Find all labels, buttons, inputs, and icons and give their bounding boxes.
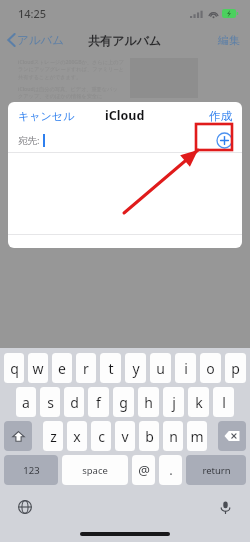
staticText: v [121,427,129,446]
staticText: t [108,359,114,378]
button[interactable]: z [43,421,63,451]
staticText: 123 [23,464,40,477]
button[interactable]: @ [132,455,155,485]
staticText: i [184,359,188,378]
staticText: y [132,359,140,378]
button[interactable]: Delete [218,421,246,451]
button[interactable]: キャンセル [18,109,75,123]
staticText: a [22,393,30,412]
staticText: w [32,359,44,378]
button[interactable]: b [139,421,159,451]
staticText: z [50,427,57,446]
button[interactable]: u [150,353,171,383]
staticText: g [119,393,128,412]
button[interactable]: アルバム [8,33,65,47]
button[interactable]: v [115,421,135,451]
button[interactable]: 作成 [209,109,232,123]
staticText: r [83,359,89,378]
button[interactable]: 連絡先を追加 [214,130,234,150]
button[interactable]: f [88,387,109,417]
button[interactable]: 123 [4,455,58,485]
button[interactable]: r [76,353,96,383]
staticText: k [195,393,203,412]
button[interactable]: g [113,387,134,417]
button[interactable]: j [163,387,184,417]
staticText: @ [138,461,150,479]
button[interactable]: d [64,387,84,417]
button[interactable]: Dictate [214,496,236,518]
button[interactable]: w [28,353,48,383]
staticText: e [58,359,66,378]
staticText: p [231,359,240,378]
button[interactable]: e [52,353,72,383]
button[interactable]: p [225,353,246,383]
staticText: 14:25 [18,6,47,21]
button[interactable]: space [62,455,128,485]
button[interactable]: t [100,353,121,383]
staticText: space [82,464,108,477]
staticText: s [47,393,54,412]
staticText: b [145,427,154,446]
staticText: x [73,427,81,446]
button[interactable]: c [91,421,111,451]
staticText: return [202,464,231,477]
button[interactable]: Change keyboard [14,496,36,518]
staticText: 宛先: [18,134,40,147]
staticText: h [144,393,153,412]
staticText: q [10,359,19,378]
button[interactable]: m [187,421,207,451]
staticText: . [169,461,173,479]
button[interactable]: Shift [4,421,32,451]
button[interactable]: o [200,353,221,383]
button[interactable]: k [188,387,209,417]
button[interactable]: . [159,455,182,485]
staticText: d [70,393,79,412]
staticText: o [206,359,215,378]
staticText: l [222,393,226,412]
button[interactable]: h [138,387,159,417]
button[interactable]: n [163,421,183,451]
staticText: j [172,393,176,412]
staticText: m [190,427,204,446]
button[interactable]: return [186,455,246,485]
button[interactable]: 編集 [218,33,240,47]
staticText: c [98,427,105,446]
staticText: n [169,427,178,446]
button[interactable]: l [213,387,234,417]
button[interactable]: s [40,387,60,417]
staticText: アルバム [17,33,65,47]
staticText: iCloud [105,107,145,124]
button[interactable]: i [175,353,196,383]
button[interactable]: y [125,353,146,383]
staticText: f [96,393,101,412]
staticText: u [156,359,165,378]
button[interactable]: a [16,387,36,417]
button[interactable]: q [4,353,24,383]
staticText: 共有アルバム [88,33,162,48]
button[interactable]: x [67,421,87,451]
